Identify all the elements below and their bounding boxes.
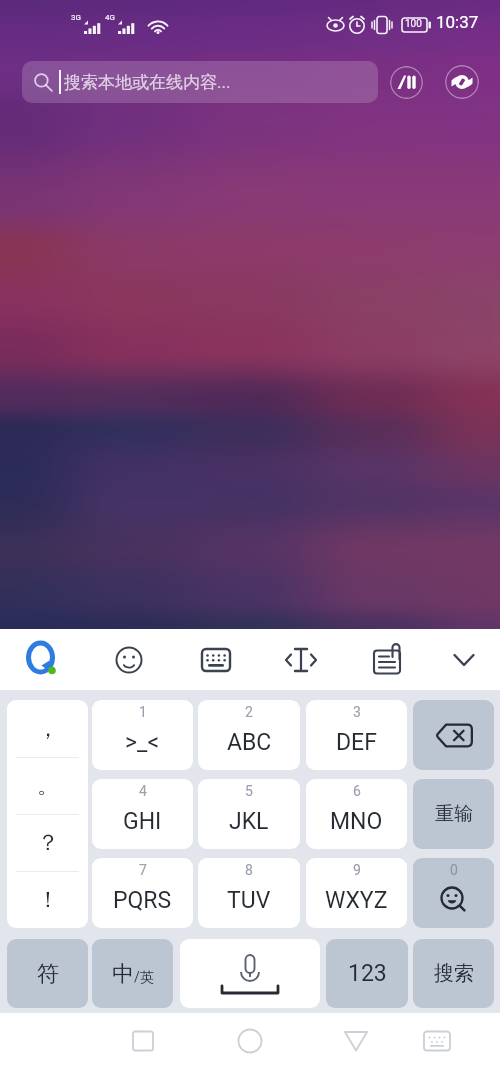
staticText: ， [37, 715, 59, 743]
button[interactable]: 8 [198, 858, 300, 928]
button[interactable]: 123 [326, 939, 408, 1008]
button[interactable]: Keyboard layout [190, 629, 242, 690]
button[interactable]: Scan [445, 65, 479, 99]
staticText: WXYZ [325, 887, 388, 914]
button[interactable]: 0 [413, 858, 494, 928]
button[interactable]: Move cursor [275, 629, 327, 690]
button[interactable]: Recents [115, 1013, 171, 1069]
button[interactable]: Back [328, 1013, 384, 1069]
button[interactable]: 重输 [413, 779, 494, 849]
staticText: 123 [348, 960, 387, 987]
button[interactable]: Hide keyboard [438, 629, 490, 690]
button[interactable]: 搜索 [413, 939, 494, 1008]
button[interactable]: 9 [306, 858, 407, 928]
staticText: 4G [105, 13, 115, 22]
staticText: MNO [330, 808, 383, 835]
staticText: 2 [245, 704, 253, 720]
button[interactable]: ， [7, 700, 88, 928]
staticText: 中 [112, 960, 134, 988]
button[interactable]: 7 [92, 858, 193, 928]
staticText: 。 [37, 772, 59, 800]
staticText: 100 [405, 18, 422, 30]
button[interactable]: 符 [7, 939, 88, 1008]
button[interactable]: Clipboard [362, 629, 414, 690]
button[interactable]: Voice input [390, 66, 423, 99]
staticText: 搜索本地或在线内容... [64, 72, 231, 93]
staticText: 符 [37, 960, 59, 988]
staticText: 9 [353, 862, 361, 878]
staticText: >_< [125, 729, 160, 756]
staticText: ！ [37, 886, 59, 914]
staticText: 3 [353, 704, 361, 720]
button[interactable]: Home [222, 1013, 278, 1069]
button[interactable]: 5 [198, 779, 300, 849]
button[interactable]: 2 [198, 700, 300, 770]
staticText: ？ [37, 829, 59, 857]
staticText: 7 [139, 862, 147, 878]
staticText: /英 [134, 969, 154, 987]
button[interactable]: 中 [92, 939, 173, 1008]
button[interactable]: 1 [92, 700, 193, 770]
staticText: 5 [245, 783, 253, 799]
staticText: TUV [227, 887, 271, 914]
button[interactable]: 3 [306, 700, 407, 770]
staticText: PQRS [113, 887, 172, 914]
button[interactable]: 6 [306, 779, 407, 849]
button[interactable]: 4 [92, 779, 193, 849]
staticText: 搜索 [434, 961, 474, 986]
staticText: DEF [336, 729, 377, 756]
staticText: 8 [245, 862, 253, 878]
staticText: GHI [123, 808, 162, 835]
staticText: 10:37 [436, 12, 479, 32]
staticText: ABC [227, 729, 272, 756]
staticText: 3G [71, 13, 81, 22]
staticText: 4 [139, 783, 147, 799]
staticText: 0 [450, 862, 458, 878]
button[interactable]: Emoji [103, 629, 155, 690]
staticText: 重输 [435, 802, 473, 826]
button[interactable] [413, 700, 494, 770]
button[interactable]: Hide keyboard [409, 1013, 465, 1069]
staticText: 1 [139, 704, 147, 720]
button[interactable]: QQ input method [16, 629, 68, 690]
button[interactable] [180, 939, 320, 1008]
button[interactable]: 搜索本地或在线内容... [22, 61, 378, 103]
staticText: 6 [353, 783, 361, 799]
staticText: JKL [229, 808, 269, 835]
